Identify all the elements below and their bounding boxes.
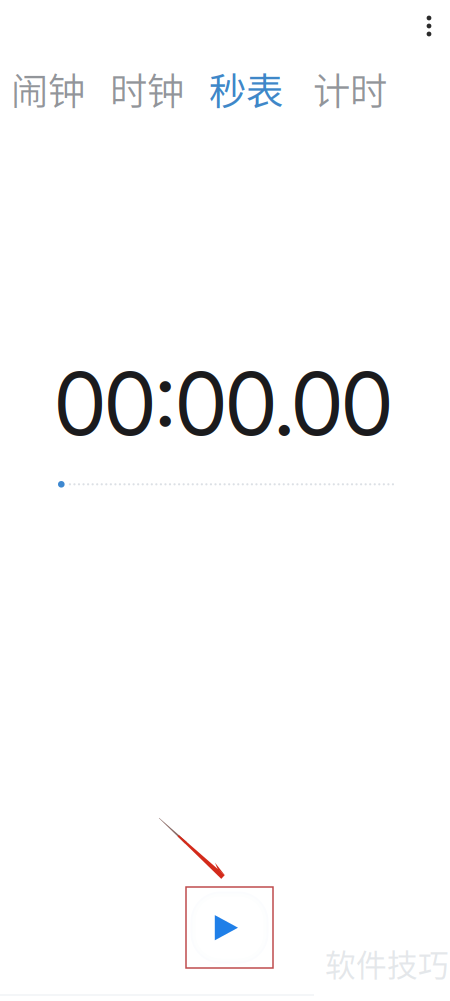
button[interactable]: More options bbox=[407, 4, 450, 48]
staticText: 秒表 bbox=[209, 62, 283, 116]
staticText: 计时 bbox=[313, 62, 387, 116]
staticText: 时钟 bbox=[110, 62, 184, 116]
staticText: 软件技巧 bbox=[325, 941, 449, 985]
staticText: 闹钟 bbox=[11, 62, 85, 116]
button[interactable]: 时钟 bbox=[110, 62, 184, 116]
button[interactable]: 秒表 bbox=[209, 62, 283, 116]
button[interactable]: Start stopwatch bbox=[186, 887, 273, 968]
button[interactable]: 计时 bbox=[313, 62, 387, 116]
staticText: 00:00.00 bbox=[55, 351, 392, 456]
button[interactable]: 闹钟 bbox=[11, 62, 85, 116]
